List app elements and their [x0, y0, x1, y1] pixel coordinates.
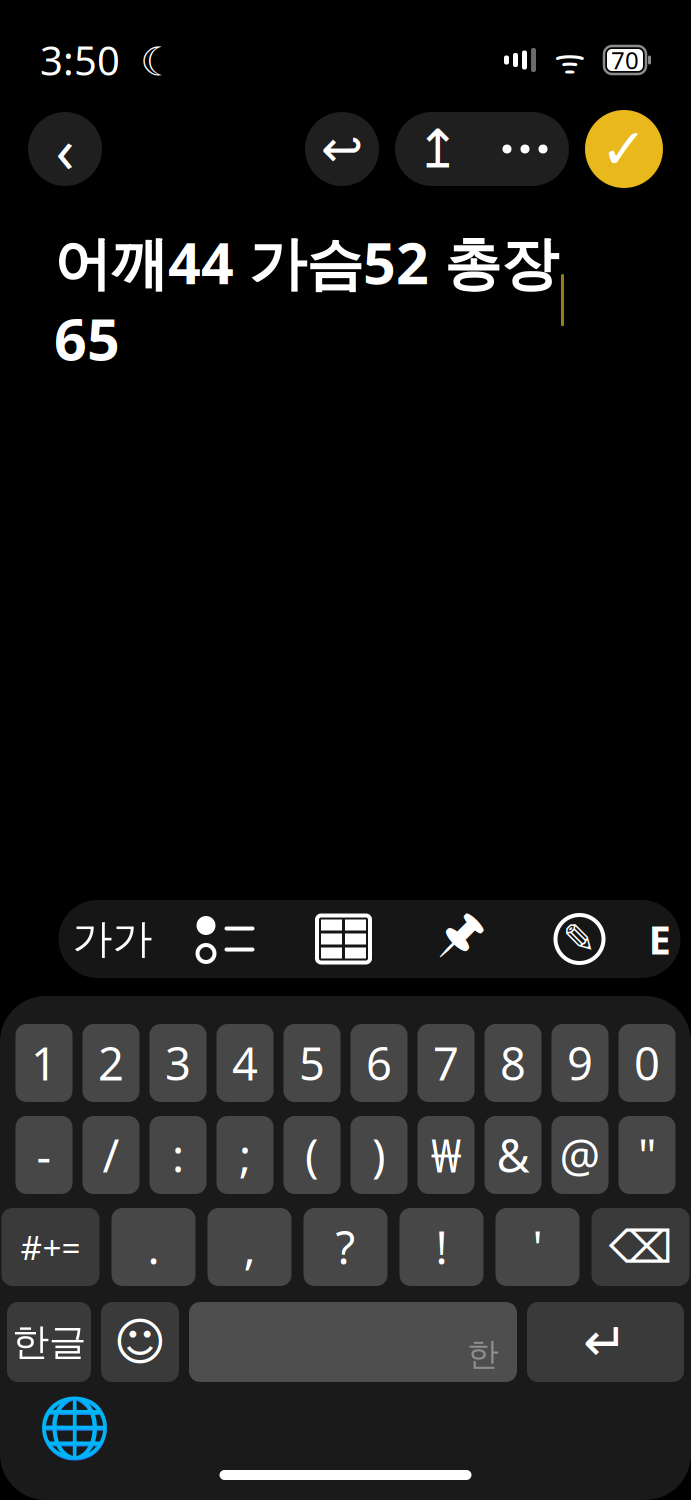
staticText: (	[305, 1125, 319, 1185]
button[interactable]: Back	[28, 112, 102, 186]
staticText: 🌐	[37, 1394, 110, 1461]
staticText: 70	[611, 44, 639, 76]
staticText: ₩	[431, 1125, 461, 1185]
staticText: :	[172, 1125, 184, 1185]
staticText: ↵	[583, 1312, 628, 1372]
staticText: 어깨44 가슴52 총장65	[54, 224, 558, 376]
button[interactable]: .	[111, 1208, 195, 1286]
staticText: 8	[500, 1033, 526, 1093]
staticText: ᯤ	[536, 37, 604, 83]
button[interactable]: ;	[216, 1116, 273, 1194]
staticText: 한	[467, 1335, 499, 1374]
button[interactable]: "	[618, 1116, 675, 1194]
staticText: ✓	[600, 117, 647, 181]
staticText: -	[36, 1125, 51, 1185]
staticText: 3:50 ☾	[40, 33, 176, 86]
button[interactable]: :	[149, 1116, 206, 1194]
staticText: !	[435, 1217, 447, 1277]
button[interactable]: (	[283, 1116, 340, 1194]
staticText: "	[638, 1125, 656, 1185]
button[interactable]: &	[484, 1116, 541, 1194]
staticText: @	[559, 1125, 600, 1185]
button[interactable]: Emoji	[101, 1302, 179, 1382]
staticText: 5	[299, 1033, 325, 1093]
staticText: #+=	[20, 1225, 80, 1269]
button[interactable]: Undo	[305, 112, 379, 186]
button[interactable]: 8	[484, 1024, 541, 1102]
button[interactable]: Checklist	[166, 900, 284, 978]
button[interactable]: 4	[216, 1024, 273, 1102]
staticText: ?	[335, 1217, 355, 1277]
button[interactable]: 3	[149, 1024, 206, 1102]
button[interactable]: 7	[417, 1024, 474, 1102]
button[interactable]: )	[350, 1116, 407, 1194]
button[interactable]: /	[82, 1116, 139, 1194]
button[interactable]: Return	[527, 1302, 684, 1382]
staticText: 2	[98, 1033, 124, 1093]
staticText: ⌫	[608, 1221, 672, 1273]
staticText: ;	[239, 1125, 251, 1185]
staticText: 한글	[12, 1319, 86, 1365]
staticText: 9	[567, 1033, 593, 1093]
staticText: ,	[243, 1217, 255, 1277]
staticText: ↩	[321, 120, 363, 178]
staticText: 6	[366, 1033, 392, 1093]
button[interactable]: 1	[15, 1024, 72, 1102]
staticText: /	[102, 1125, 119, 1185]
button[interactable]: Space	[189, 1302, 517, 1382]
button[interactable]: '	[495, 1208, 579, 1286]
button[interactable]: Share	[395, 112, 481, 186]
staticText: ☺	[113, 1313, 166, 1371]
button[interactable]: Next keyboard	[38, 1392, 110, 1464]
button[interactable]: Done	[585, 110, 663, 188]
button[interactable]: 9	[551, 1024, 608, 1102]
staticText: E	[648, 912, 670, 965]
staticText: '	[532, 1217, 542, 1277]
button[interactable]: 가가	[58, 900, 166, 978]
button[interactable]: Delete	[591, 1208, 689, 1286]
staticText: 가가	[72, 914, 152, 963]
button[interactable]: @	[551, 1116, 608, 1194]
button[interactable]: 0	[618, 1024, 675, 1102]
staticText: 1	[31, 1033, 57, 1093]
staticText: )	[372, 1125, 386, 1185]
button[interactable]: ,	[207, 1208, 291, 1286]
button[interactable]: Markup	[520, 900, 638, 978]
button[interactable]: ?	[303, 1208, 387, 1286]
button[interactable]: 한글	[7, 1302, 91, 1382]
button[interactable]: More	[481, 112, 569, 186]
staticText: ✎	[562, 916, 596, 962]
button[interactable]: More tools	[638, 900, 680, 978]
button[interactable]: 5	[283, 1024, 340, 1102]
staticText: &	[496, 1125, 529, 1185]
button[interactable]: Table	[284, 900, 402, 978]
button[interactable]: 6	[350, 1024, 407, 1102]
button[interactable]: #+=	[1, 1208, 99, 1286]
staticText: .	[147, 1217, 159, 1277]
staticText: 0	[634, 1033, 660, 1093]
staticText: ‹	[55, 108, 74, 190]
staticText: 4	[232, 1033, 258, 1093]
button[interactable]: 2	[82, 1024, 139, 1102]
button[interactable]: !	[399, 1208, 483, 1286]
staticText: 3	[165, 1033, 191, 1093]
staticText: 7	[433, 1033, 459, 1093]
staticText: 🖈	[437, 895, 486, 983]
staticText: ↥	[415, 119, 460, 179]
button[interactable]: Attach	[402, 900, 520, 978]
button[interactable]: ₩	[417, 1116, 474, 1194]
button[interactable]: -	[15, 1116, 72, 1194]
